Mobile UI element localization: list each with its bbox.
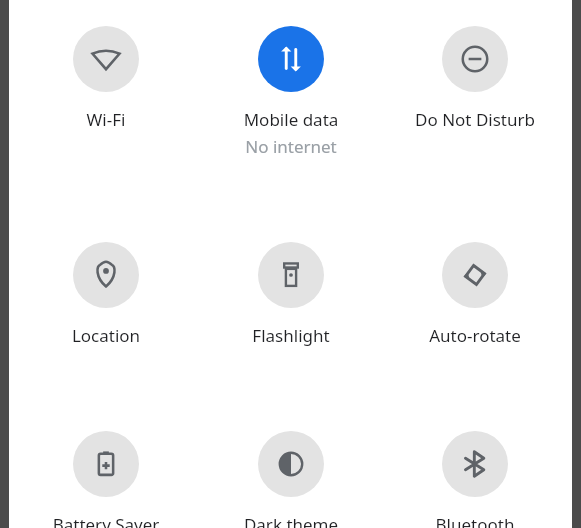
- staticText: Do Not Disturb: [387, 108, 563, 131]
- button[interactable]: Location: [18, 242, 194, 347]
- staticText: No internet: [203, 135, 379, 158]
- staticText: Mobile data: [203, 108, 379, 131]
- button[interactable]: Battery Saver: [18, 431, 194, 528]
- button[interactable]: Do Not Disturb: [387, 26, 563, 131]
- staticText: Wi-Fi: [18, 108, 194, 131]
- staticText: Battery Saver: [18, 513, 194, 528]
- staticText: Bluetooth: [387, 513, 563, 528]
- button[interactable]: Dark theme: [203, 431, 379, 528]
- staticText: Auto-rotate: [387, 324, 563, 347]
- button[interactable]: Bluetooth: [387, 431, 563, 528]
- button[interactable]: Wi-Fi: [18, 26, 194, 131]
- button[interactable]: Auto-rotate: [387, 242, 563, 347]
- staticText: Dark theme: [203, 513, 379, 528]
- button[interactable]: Flashlight: [203, 242, 379, 347]
- staticText: Flashlight: [203, 324, 379, 347]
- staticText: Location: [18, 324, 194, 347]
- button[interactable]: Mobile data: [203, 26, 379, 158]
